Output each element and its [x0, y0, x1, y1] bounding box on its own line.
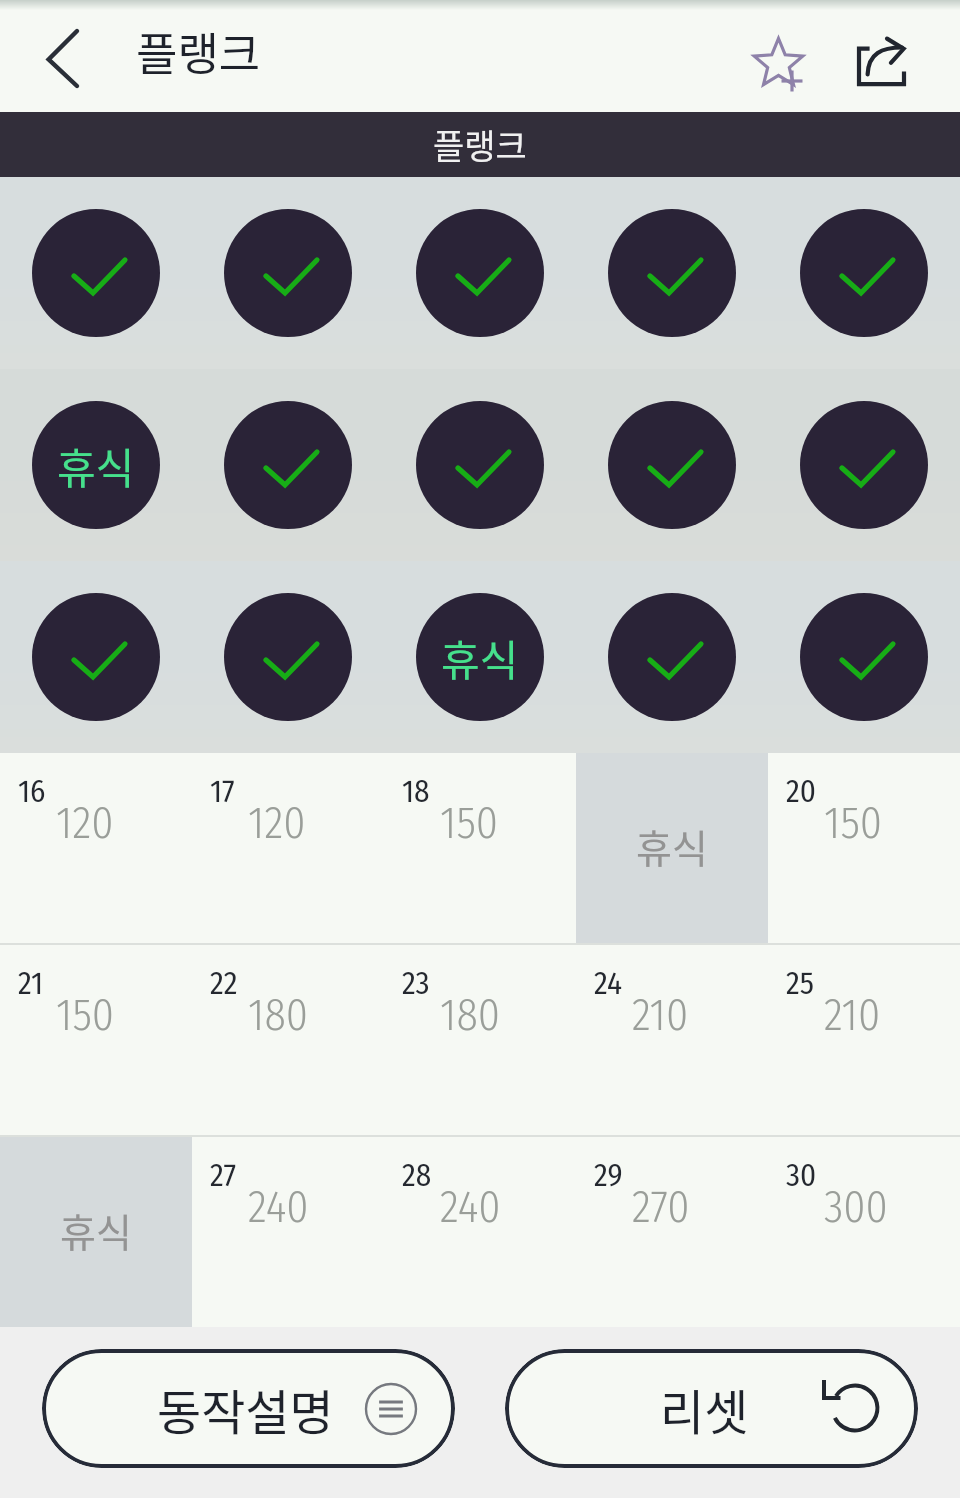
staticText: 240 [440, 1181, 501, 1234]
button[interactable]: Back [12, 12, 94, 94]
staticText: 동작설명 [157, 1374, 334, 1444]
staticText: 휴식 [636, 818, 708, 874]
button[interactable]: 21 [0, 945, 192, 1135]
button[interactable]: Completed day [768, 177, 960, 369]
button[interactable]: 20 [768, 753, 960, 943]
button[interactable]: 16 [0, 753, 192, 943]
staticText: 17 [210, 773, 235, 810]
staticText: 휴식 [441, 627, 519, 688]
staticText: 240 [248, 1181, 309, 1234]
button[interactable]: 28 [384, 1137, 576, 1327]
staticText: 120 [56, 797, 114, 850]
button[interactable]: Completed day [768, 369, 960, 561]
button[interactable]: Completed day [768, 561, 960, 753]
staticText: 29 [594, 1157, 623, 1194]
button[interactable]: Completed day [192, 177, 384, 369]
staticText: 휴식 [57, 435, 135, 496]
staticText: 210 [824, 989, 881, 1042]
button[interactable]: Completed day [576, 369, 768, 561]
staticText: 플랭크 [433, 120, 527, 169]
button[interactable]: 24 [576, 945, 768, 1135]
button[interactable]: 18 [384, 753, 576, 943]
button[interactable]: Completed day [192, 561, 384, 753]
staticText: 18 [402, 773, 430, 810]
staticText: 180 [440, 989, 501, 1042]
staticText: 300 [824, 1181, 888, 1234]
button[interactable]: 25 [768, 945, 960, 1135]
button[interactable]: 27 [192, 1137, 384, 1327]
button[interactable]: 동작설명 [42, 1349, 455, 1468]
button[interactable]: Completed day [576, 561, 768, 753]
button[interactable]: 29 [576, 1137, 768, 1327]
button[interactable]: Completed day [384, 177, 576, 369]
staticText: 25 [786, 965, 814, 1002]
button[interactable]: 30 [768, 1137, 960, 1327]
staticText: 210 [632, 989, 689, 1042]
button[interactable]: 23 [384, 945, 576, 1135]
button[interactable]: Completed day [0, 561, 192, 753]
staticText: 270 [632, 1181, 690, 1234]
button[interactable]: Completed day [384, 369, 576, 561]
staticText: 20 [786, 773, 816, 810]
button[interactable]: Share [842, 24, 926, 108]
staticText: 22 [210, 965, 238, 1002]
staticText: 27 [210, 1157, 237, 1194]
staticText: 플랭크 [136, 19, 261, 84]
staticText: 리셋 [660, 1374, 749, 1444]
staticText: 120 [248, 797, 306, 850]
button[interactable]: 리셋 [505, 1349, 918, 1468]
button[interactable]: Completed day [576, 177, 768, 369]
staticText: 30 [786, 1157, 817, 1194]
staticText: 21 [18, 965, 44, 1002]
staticText: 180 [248, 989, 309, 1042]
staticText: 150 [440, 797, 499, 850]
button[interactable]: 휴식 [576, 753, 768, 943]
staticText: 150 [824, 797, 883, 850]
staticText: 28 [402, 1157, 432, 1194]
button[interactable]: Add to favorites [737, 18, 821, 102]
staticText: 16 [18, 773, 46, 810]
button[interactable]: 휴식 [0, 1137, 192, 1327]
button[interactable]: Rest day [384, 561, 576, 753]
button[interactable]: 17 [192, 753, 384, 943]
staticText: 휴식 [60, 1202, 132, 1258]
staticText: 23 [402, 965, 430, 1002]
button[interactable]: Rest day [0, 369, 192, 561]
button[interactable]: Completed day [0, 177, 192, 369]
button[interactable]: 22 [192, 945, 384, 1135]
button[interactable]: Completed day [192, 369, 384, 561]
staticText: 150 [56, 989, 115, 1042]
staticText: 24 [594, 965, 623, 1002]
